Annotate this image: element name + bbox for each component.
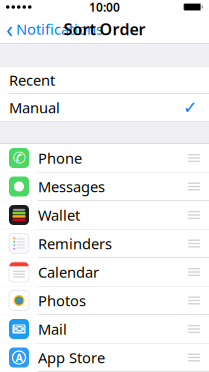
button[interactable]: ‹: [0, 10, 103, 48]
staticText: ✉: [13, 321, 24, 336]
staticText: Wallet: [38, 205, 80, 225]
staticText: ✆: [12, 149, 25, 167]
button[interactable]: Photos: [0, 286, 209, 314]
staticText: Notifications: [16, 19, 103, 39]
staticText: ✓: [183, 98, 198, 117]
staticText: A: [15, 350, 22, 365]
button[interactable]: ✉: [0, 315, 209, 343]
staticText: Recent: [9, 70, 55, 90]
button[interactable]: Reminders: [0, 229, 209, 257]
button[interactable]: Recent: [0, 66, 209, 93]
button[interactable]: ✆: [0, 144, 209, 172]
staticText: App Store: [38, 348, 105, 367]
staticText: Sort Order: [63, 18, 145, 40]
staticText: 10:00: [89, 0, 120, 15]
staticText: Manual: [9, 98, 60, 117]
staticText: Mail: [38, 319, 67, 339]
staticText: Calendar: [38, 262, 99, 282]
staticText: Photos: [38, 291, 86, 310]
staticText: Messages: [38, 177, 105, 196]
staticText: Phone: [38, 148, 82, 168]
staticText: ‹: [6, 14, 13, 44]
staticText: Reminders: [38, 234, 112, 253]
button[interactable]: Manual: [0, 94, 209, 121]
button[interactable]: Wallet: [0, 201, 209, 229]
button[interactable]: Messages: [0, 172, 209, 200]
button[interactable]: A: [0, 343, 209, 371]
button[interactable]: Calendar: [0, 258, 209, 286]
